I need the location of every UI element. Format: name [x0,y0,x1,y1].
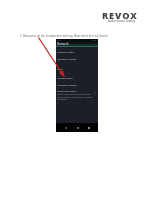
staticText: Firmware Update [57,83,77,86]
staticText: 100% [92,39,97,42]
staticText: Configuration [57,76,73,79]
staticText: 3. Now press on the Loudspeaker settings… [20,34,111,38]
staticText: Network Standby [57,57,77,60]
staticText: Wi-Fi [57,67,63,70]
button[interactable]: Network Standby [56,57,98,63]
staticText: 9:41 [57,39,61,42]
button[interactable]: Network Mode [56,50,98,53]
button[interactable]: Recents [86,125,91,130]
staticText: Device information [57,90,77,93]
staticText: Please note that the app needs an active… [57,93,93,101]
staticText: off [57,60,60,63]
button[interactable]: Configuration [56,76,98,79]
staticText: Audio Sound Quality [108,19,136,23]
button[interactable]: Wi-Fi [56,67,98,70]
button[interactable]: Back [63,125,68,130]
button[interactable]: Firmware Update [56,83,98,86]
button[interactable]: Home [75,125,80,130]
staticText: REVOX [102,9,138,22]
staticText: Network Mode [57,50,74,53]
staticText: Network [57,42,69,46]
